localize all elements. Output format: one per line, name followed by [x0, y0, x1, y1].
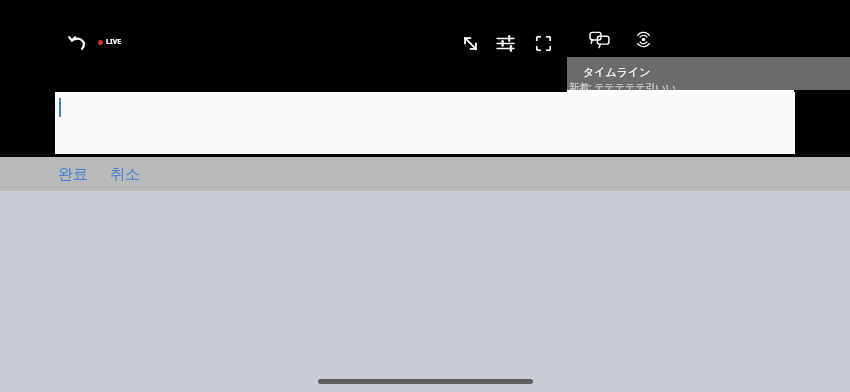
button[interactable]: タイムライン: [567, 57, 850, 90]
button[interactable]: Undo: [62, 28, 94, 60]
button[interactable]: [55, 92, 795, 154]
button[interactable]: LIVE: [98, 37, 122, 47]
button[interactable]: Resize: [455, 28, 485, 58]
button[interactable]: 완료: [58, 165, 88, 184]
button[interactable]: Comments: [584, 24, 614, 54]
staticText: タイムライン: [583, 65, 651, 79]
button[interactable]: Broadcast: [628, 24, 658, 54]
button[interactable]: Fullscreen: [528, 28, 558, 58]
button[interactable]: 취소: [110, 165, 140, 184]
staticText: 완료: [58, 165, 88, 184]
staticText: LIVE: [106, 37, 122, 47]
staticText: 新着: テテテテテ引いい: [569, 80, 676, 94]
button[interactable]: Adjust settings: [490, 28, 520, 58]
staticText: 취소: [110, 165, 140, 184]
